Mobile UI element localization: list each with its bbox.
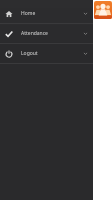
staticText: Attendance [21, 30, 48, 37]
staticText: Logout [21, 50, 38, 57]
button[interactable]: Home [0, 4, 93, 23]
button[interactable]: Logout [0, 44, 93, 63]
button[interactable]: App [93, 1, 112, 23]
staticText: Home [21, 10, 36, 17]
button[interactable]: Attendance [0, 24, 93, 43]
